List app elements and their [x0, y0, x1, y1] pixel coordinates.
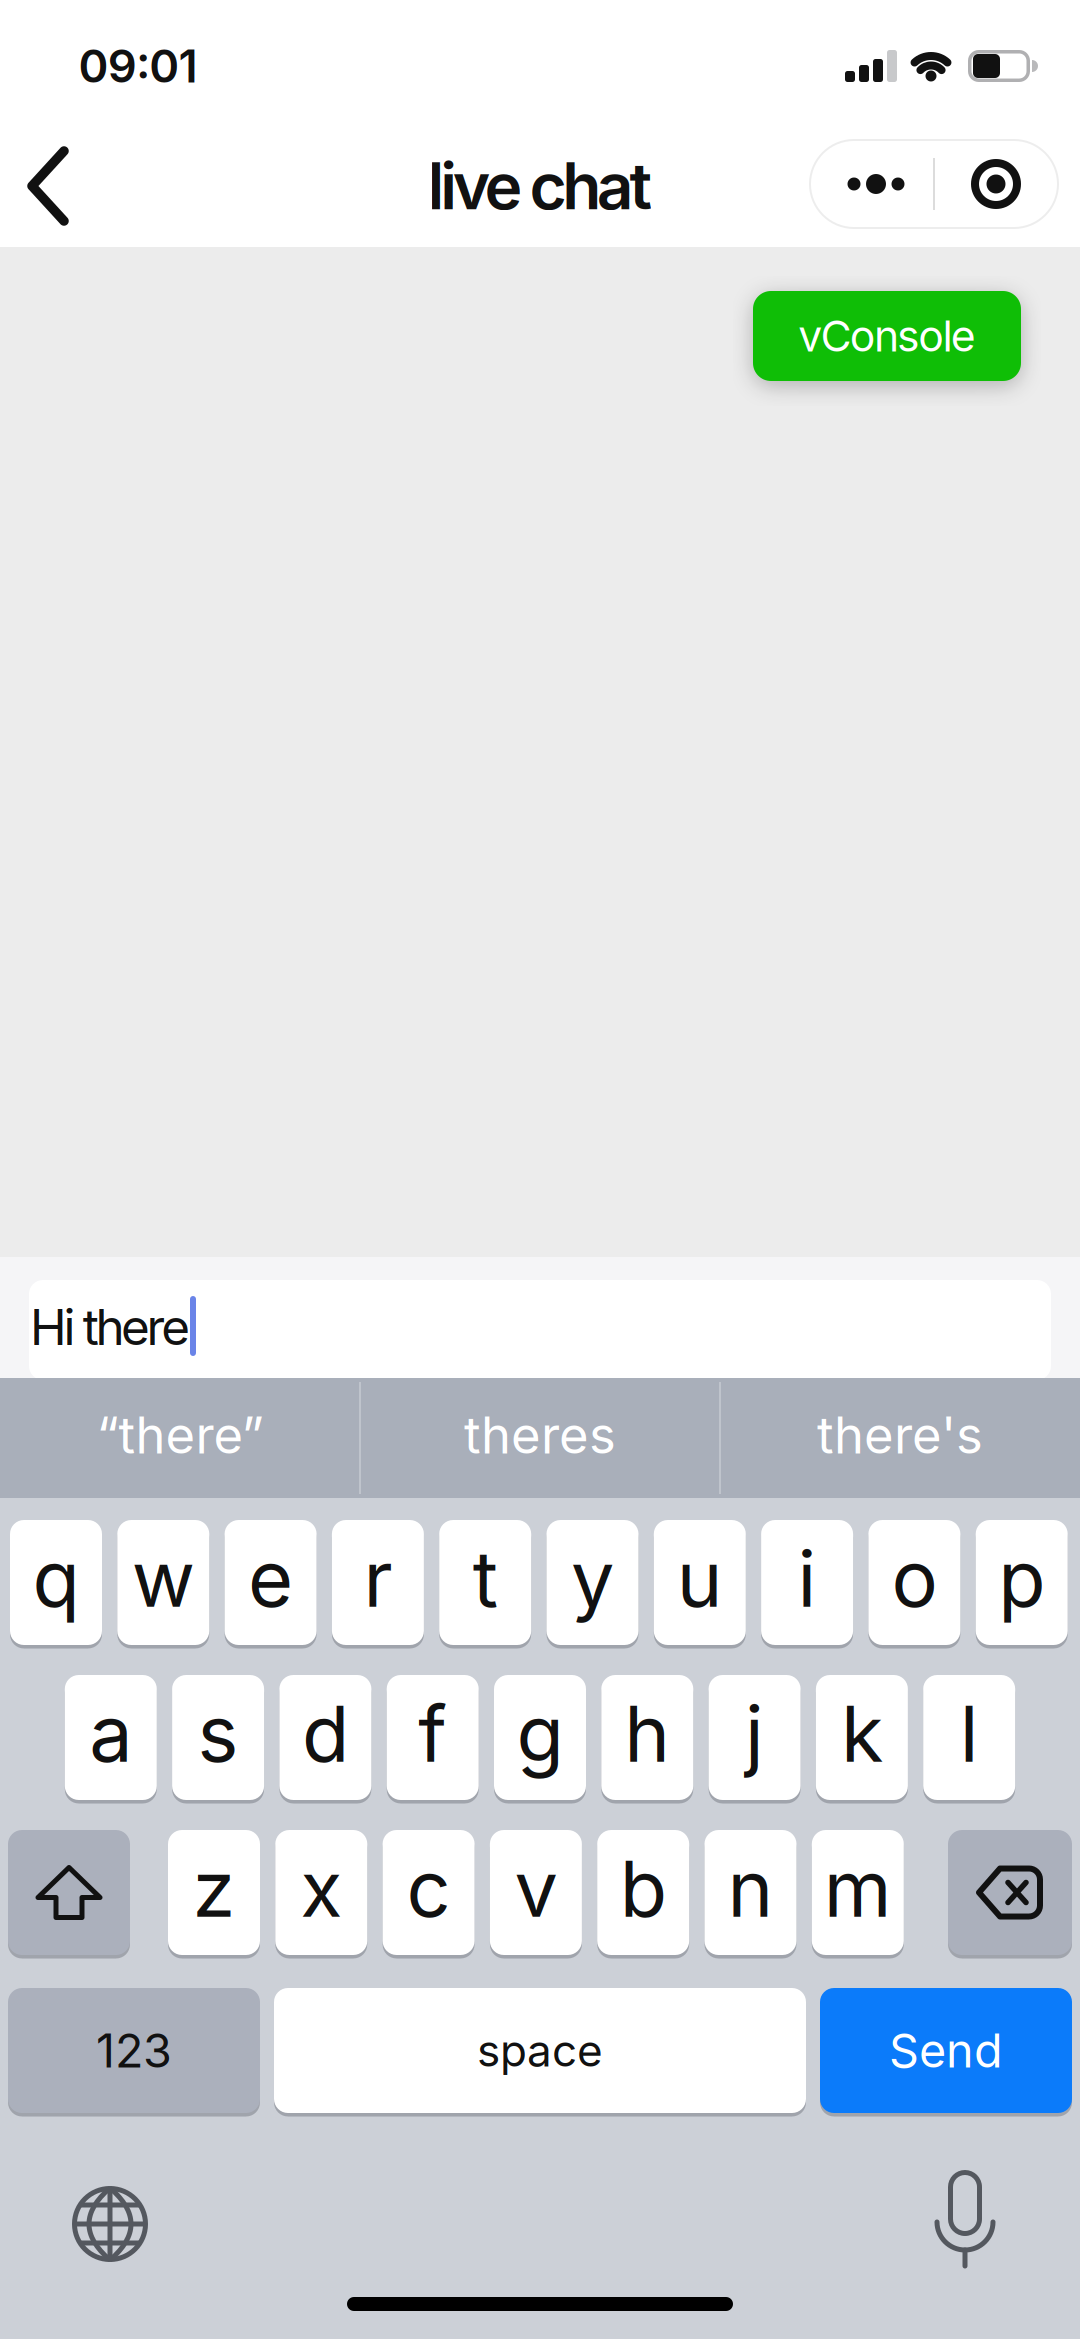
staticText: q: [32, 1533, 79, 1624]
staticText: m: [824, 1843, 892, 1934]
staticText: 09:01: [79, 39, 197, 93]
staticText: Hi there: [30, 1298, 190, 1356]
staticText: Send: [889, 2023, 1003, 2078]
button[interactable]: b: [597, 1830, 689, 1955]
staticText: i: [798, 1533, 817, 1624]
staticText: 123: [96, 2023, 172, 2078]
staticText: c: [407, 1843, 451, 1934]
button[interactable]: u: [654, 1520, 746, 1645]
button[interactable]: [60, 2174, 160, 2274]
staticText: j: [745, 1688, 764, 1779]
button[interactable]: [8, 1830, 130, 1955]
button[interactable]: l: [923, 1675, 1015, 1800]
button[interactable]: c: [383, 1830, 475, 1955]
staticText: p: [998, 1533, 1045, 1624]
staticText: r: [363, 1533, 392, 1624]
staticText: e: [248, 1533, 293, 1624]
button[interactable]: t: [439, 1520, 531, 1645]
button[interactable]: space: [274, 1988, 806, 2113]
staticText: there's: [817, 1405, 983, 1465]
staticText: space: [477, 2024, 603, 2076]
button[interactable]: m: [812, 1830, 904, 1955]
button[interactable]: o: [868, 1520, 960, 1645]
button[interactable]: n: [704, 1830, 796, 1955]
staticText: b: [620, 1843, 667, 1934]
button[interactable]: theres: [362, 1375, 718, 1495]
button[interactable]: [915, 2163, 1015, 2273]
button[interactable]: Hi there: [29, 1280, 1051, 1380]
button[interactable]: d: [279, 1675, 371, 1800]
button[interactable]: h: [601, 1675, 693, 1800]
staticText: w: [132, 1533, 195, 1624]
staticText: vConsole: [798, 311, 976, 361]
staticText: y: [571, 1533, 614, 1624]
staticText: a: [89, 1688, 132, 1779]
button[interactable]: [809, 139, 1059, 229]
button[interactable]: p: [976, 1520, 1068, 1645]
button[interactable]: 123: [8, 1988, 260, 2113]
button[interactable]: z: [168, 1830, 260, 1955]
button[interactable]: y: [546, 1520, 638, 1645]
staticText: live chat: [428, 148, 652, 224]
staticText: u: [677, 1533, 723, 1624]
button[interactable]: Send: [820, 1988, 1072, 2113]
staticText: v: [514, 1843, 557, 1934]
button[interactable]: x: [275, 1830, 367, 1955]
staticText: “there”: [96, 1405, 263, 1465]
button[interactable]: s: [172, 1675, 264, 1800]
staticText: k: [841, 1688, 883, 1779]
button[interactable]: there's: [722, 1375, 1078, 1495]
button[interactable]: r: [332, 1520, 424, 1645]
staticText: z: [192, 1843, 235, 1934]
button[interactable]: [948, 1830, 1072, 1955]
button[interactable]: f: [387, 1675, 479, 1800]
staticText: g: [516, 1688, 563, 1779]
staticText: d: [302, 1688, 349, 1779]
button[interactable]: v: [490, 1830, 582, 1955]
staticText: l: [960, 1688, 979, 1779]
button[interactable]: k: [816, 1675, 908, 1800]
button[interactable]: w: [117, 1520, 209, 1645]
staticText: f: [418, 1688, 447, 1779]
staticText: t: [473, 1533, 498, 1624]
button[interactable]: a: [65, 1675, 157, 1800]
staticText: x: [300, 1843, 342, 1934]
staticText: n: [727, 1843, 773, 1934]
button[interactable]: vConsole: [753, 291, 1021, 381]
button[interactable]: i: [761, 1520, 853, 1645]
button[interactable]: “there”: [2, 1375, 358, 1495]
button[interactable]: e: [225, 1520, 317, 1645]
staticText: h: [624, 1688, 670, 1779]
button[interactable]: q: [10, 1520, 102, 1645]
button[interactable]: [16, 142, 80, 230]
button[interactable]: g: [494, 1675, 586, 1800]
staticText: theres: [464, 1405, 616, 1465]
button[interactable]: j: [709, 1675, 801, 1800]
staticText: s: [198, 1688, 239, 1779]
staticText: o: [891, 1533, 937, 1624]
